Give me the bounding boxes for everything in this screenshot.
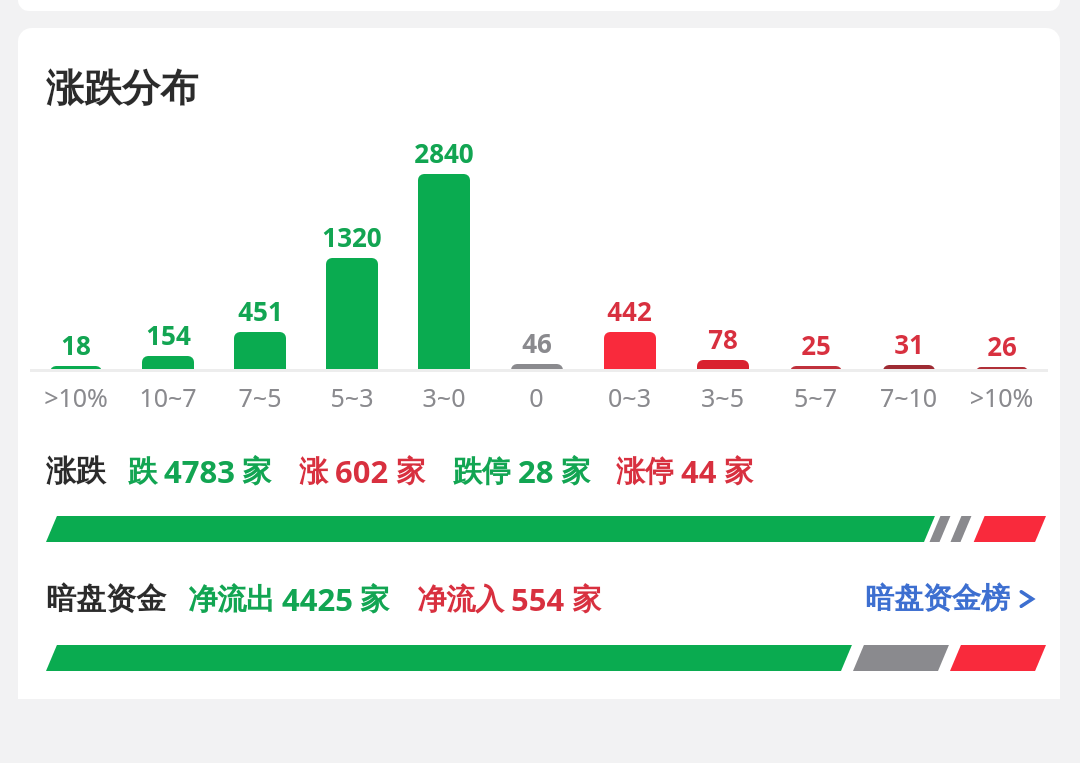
staticText: 154: [146, 317, 191, 352]
staticText: 46: [522, 325, 552, 360]
staticText: 跌: [128, 453, 157, 490]
staticText: 451: [238, 293, 283, 328]
staticText: 7~5: [214, 380, 306, 414]
staticText: 554: [511, 578, 565, 620]
staticText: 4783: [164, 450, 235, 492]
staticText: 涨: [299, 453, 328, 490]
staticText: 暗盘资金榜: [865, 580, 1010, 617]
staticText: 暗盘资金: [46, 580, 166, 618]
staticText: 5~7: [769, 380, 862, 414]
staticText: 跌停: [453, 453, 511, 490]
staticText: 净流入: [417, 581, 504, 618]
staticText: 442: [607, 293, 652, 328]
staticText: 26: [987, 328, 1017, 363]
staticText: 44: [681, 450, 717, 492]
staticText: 家: [572, 581, 601, 618]
staticText: 涨停: [616, 453, 674, 490]
staticText: 0~3: [583, 380, 676, 414]
staticText: 31: [894, 326, 924, 361]
staticText: 7~10: [862, 380, 955, 414]
staticText: 5~3: [306, 380, 398, 414]
staticText: 涨跌分布: [46, 64, 198, 112]
staticText: 家: [724, 453, 753, 490]
staticText: 家: [360, 581, 389, 618]
staticText: 0: [490, 380, 583, 414]
button[interactable]: 涨跌: [18, 450, 1060, 492]
other: More: [1018, 586, 1036, 612]
staticText: 涨跌: [46, 452, 106, 490]
staticText: 家: [242, 453, 271, 490]
button[interactable]: 暗盘资金榜: [863, 576, 1038, 621]
staticText: 28: [518, 450, 554, 492]
staticText: 家: [396, 453, 425, 490]
staticText: 18: [61, 327, 91, 362]
staticText: 2840: [414, 135, 474, 170]
staticText: 3~0: [398, 380, 490, 414]
staticText: 3~5: [676, 380, 769, 414]
staticText: 25: [801, 327, 831, 362]
staticText: >10%: [30, 380, 122, 414]
staticText: 4425: [282, 578, 353, 620]
staticText: 家: [561, 453, 590, 490]
staticText: 10~7: [122, 380, 214, 414]
staticText: >10%: [955, 380, 1048, 414]
staticText: 1320: [322, 219, 382, 254]
staticText: 602: [335, 450, 389, 492]
staticText: 78: [708, 321, 738, 356]
staticText: 净流出: [188, 581, 275, 618]
